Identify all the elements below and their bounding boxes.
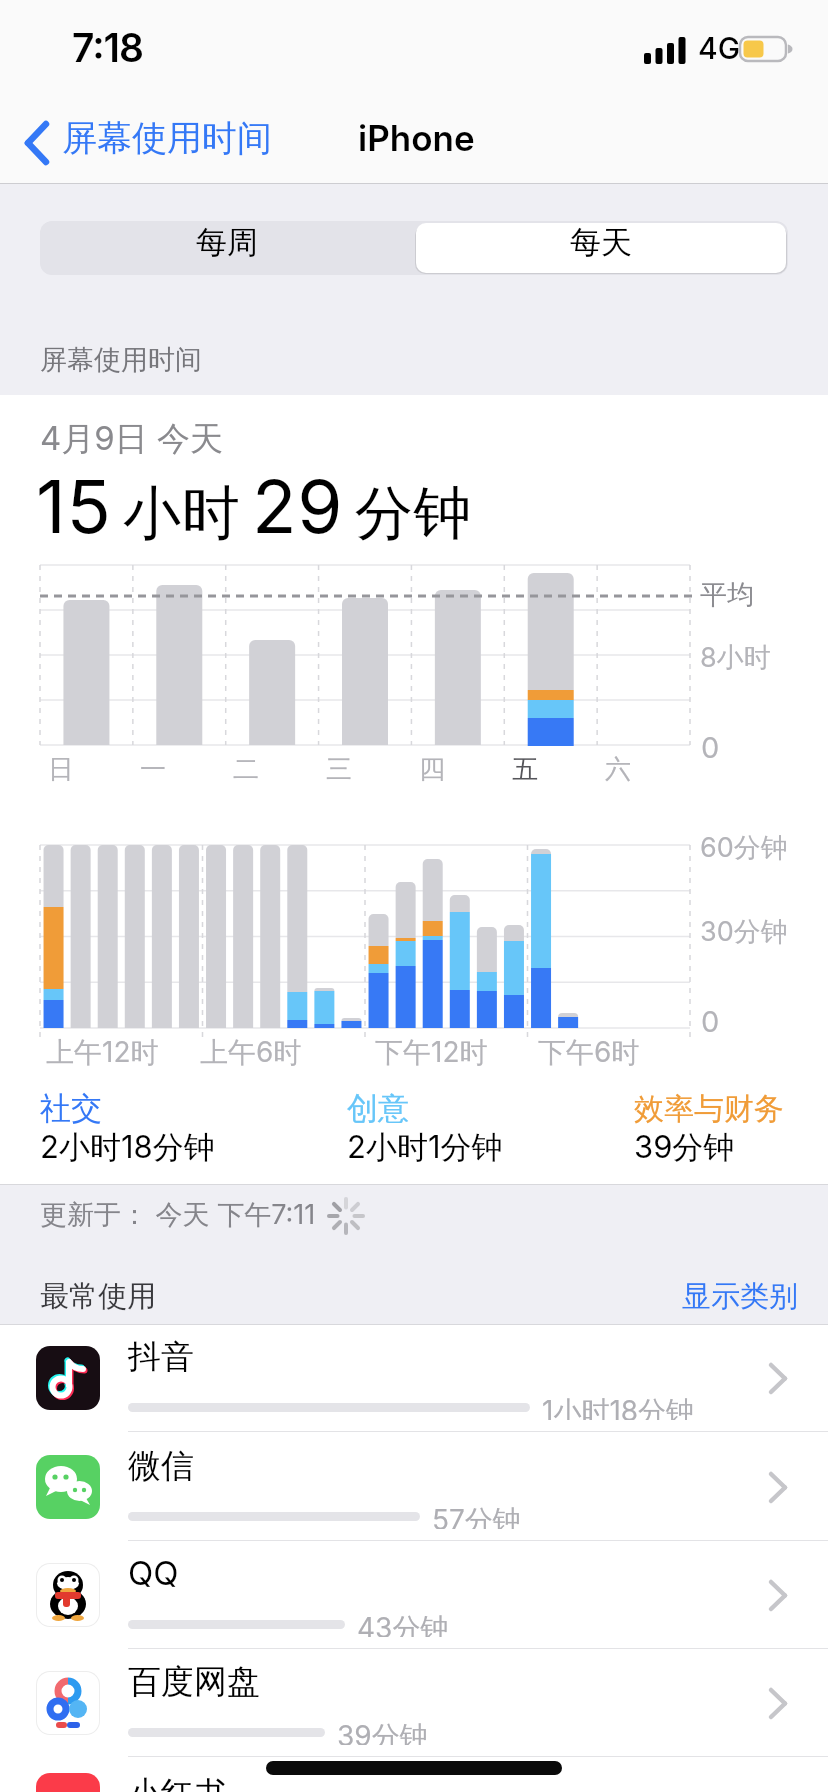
staticText: 日 [48,753,74,786]
staticText: 上午6时 [200,1035,302,1070]
button[interactable]: 小红书 [0,1757,828,1792]
staticText: 抖音 [128,1336,194,1378]
button[interactable]: 屏幕使用时间 [10,106,300,176]
staticText: 最常使用 [40,1278,156,1315]
staticText: 平均 [700,578,754,612]
staticText: iPhone [358,117,475,159]
staticText: 更新于： 今天 下午7:11 [40,1198,316,1232]
staticText: 1小时18分钟 [542,1394,695,1420]
staticText: 下午6时 [538,1035,640,1070]
staticText: 屏幕使用时间 [62,116,272,160]
staticText: 57分钟 [432,1503,521,1529]
staticText: 15 小时 29 分钟 [36,462,473,550]
staticText: 屏幕使用时间 [40,343,202,377]
staticText: 0 [701,730,720,765]
staticText: 百度网盘 [128,1661,260,1703]
staticText: 每周 [196,223,258,262]
staticText: 三 [326,753,352,786]
staticText: 0 [701,1004,720,1039]
staticText: 微信 [128,1445,194,1487]
staticText: 上午12时 [46,1035,159,1070]
button[interactable] [416,223,786,273]
button[interactable]: 百度网盘 [0,1649,828,1757]
staticText: 43分钟 [357,1611,449,1637]
staticText: 六 [605,753,631,786]
staticText: 一 [140,753,166,786]
staticText: 2小时1分钟 [347,1128,503,1167]
button[interactable]: QQ [0,1541,828,1649]
staticText: 五 [512,753,538,786]
staticText: 4G [698,30,741,66]
staticText: 下午12时 [375,1035,488,1070]
staticText: 8小时 [700,641,771,675]
staticText: 30分钟 [700,915,788,949]
staticText: 每天 [570,223,632,262]
button[interactable]: 显示类别 [660,1270,828,1325]
staticText: 2小时18分钟 [40,1128,215,1167]
staticText: 39分钟 [337,1719,428,1745]
staticText: 4月9日 今天 [40,418,224,460]
staticText: 39分钟 [634,1128,735,1167]
staticText: QQ [128,1553,179,1593]
staticText: 效率与财务 [634,1090,784,1128]
staticText: 60分钟 [700,831,788,865]
button[interactable] [40,221,414,275]
staticText: 7:18 [72,24,144,71]
staticText: 创意 [347,1089,409,1128]
staticText: 社交 [40,1089,102,1128]
button[interactable]: 微信 [0,1433,828,1541]
button[interactable]: 抖音 [0,1324,828,1432]
staticText: 显示类别 [682,1278,798,1315]
staticText: 二 [233,753,259,786]
staticText: 四 [419,753,445,786]
staticText: 小红书 [128,1773,227,1792]
